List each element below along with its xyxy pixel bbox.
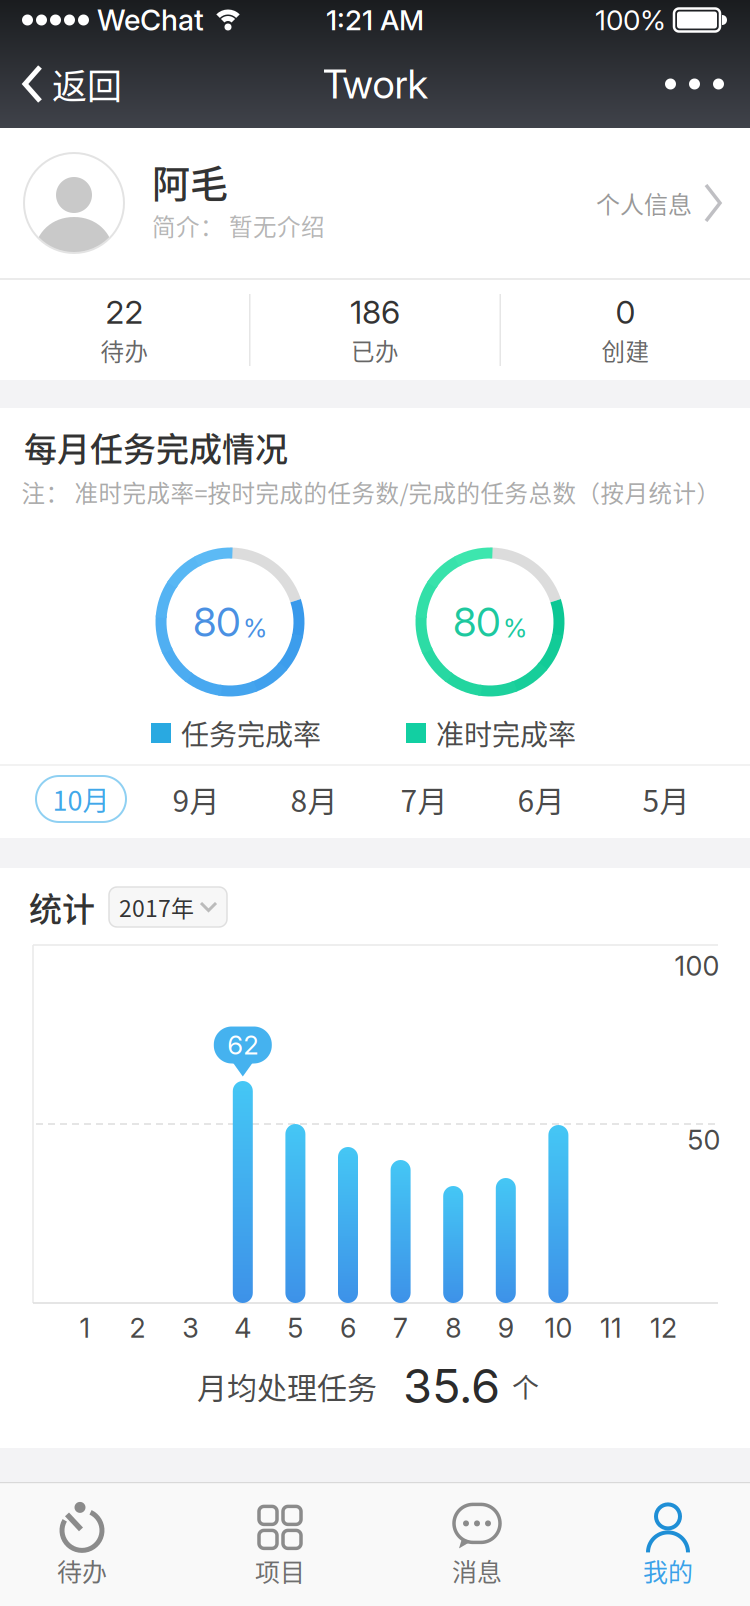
staticText: 11	[600, 1312, 622, 1344]
button[interactable]: 消息	[452, 1502, 502, 1589]
staticText: 个	[500, 1366, 539, 1406]
staticText: 待办	[100, 333, 148, 367]
button[interactable]: More	[665, 78, 750, 89]
staticText: 2017年	[119, 890, 194, 924]
staticText: 80	[453, 598, 501, 646]
staticText: 10月	[52, 779, 109, 819]
button[interactable]: 待办	[57, 1502, 107, 1589]
staticText: 任务完成率	[181, 713, 321, 753]
staticText: 准时完成率	[436, 713, 576, 753]
staticText: 80	[193, 598, 241, 646]
button[interactable]: 9月	[172, 776, 219, 822]
staticText: 待办	[57, 1552, 107, 1589]
staticText: 9月	[172, 777, 219, 821]
staticText: 100	[674, 950, 719, 982]
staticText: 6	[340, 1312, 356, 1344]
staticText: 62	[227, 1029, 258, 1061]
staticText: 12	[650, 1312, 677, 1344]
staticText: 我的	[643, 1552, 693, 1589]
staticText: 22	[105, 293, 143, 331]
staticText: 9	[498, 1312, 514, 1344]
button[interactable]: 项目	[255, 1502, 305, 1589]
staticText: 186	[350, 293, 400, 331]
staticText: 创建	[601, 333, 649, 367]
staticText: 4	[234, 1312, 251, 1344]
button[interactable]: 7月	[400, 776, 447, 822]
button[interactable]: 22	[0, 293, 249, 367]
staticText: 8月	[290, 777, 337, 821]
staticText: 50	[687, 1124, 720, 1156]
staticText: 6月	[517, 777, 564, 821]
staticText: 7月	[400, 777, 447, 821]
button[interactable]: 阿毛	[0, 128, 750, 278]
staticText: 1	[79, 1312, 90, 1344]
staticText: 返回	[52, 59, 122, 109]
staticText: 个人信息	[596, 186, 692, 220]
button[interactable]: 10月	[36, 776, 126, 822]
staticText: 注： 准时完成率=按时完成的任务数/完成的任务总数（按月统计）	[21, 475, 720, 509]
staticText: 统计	[29, 883, 95, 931]
staticText: %	[503, 612, 527, 644]
staticText: 2	[130, 1312, 146, 1344]
staticText: 已办	[351, 333, 399, 367]
staticText: 1:21 AM	[326, 3, 424, 37]
staticText: 10	[544, 1312, 572, 1344]
staticText: 简介： 暂无介绍	[152, 208, 325, 242]
staticText: WeChat	[97, 2, 204, 38]
staticText: 100%	[595, 3, 666, 37]
staticText: 消息	[452, 1552, 502, 1589]
staticText: %	[243, 612, 267, 644]
staticText: 月均处理任务	[197, 1364, 377, 1408]
staticText: 项目	[255, 1552, 305, 1589]
staticText: 0	[615, 293, 635, 331]
button[interactable]: Back	[0, 59, 122, 109]
staticText: 阿毛	[152, 153, 228, 208]
staticText: 35.6	[377, 1358, 500, 1414]
staticText: 每月任务完成情况	[24, 423, 288, 471]
staticText: 3	[182, 1312, 198, 1344]
button[interactable]: 6月	[517, 776, 564, 822]
button[interactable]: 5月	[642, 776, 689, 822]
button[interactable]: 186	[250, 293, 499, 367]
staticText: 7	[393, 1312, 408, 1344]
staticText: Twork	[322, 60, 427, 108]
staticText: 8	[445, 1312, 461, 1344]
staticText: 5月	[642, 777, 689, 821]
button[interactable]: 8月	[290, 776, 337, 822]
button[interactable]: 我的	[643, 1502, 693, 1589]
button[interactable]: 0	[501, 293, 750, 367]
staticText: 5	[287, 1312, 303, 1344]
button[interactable]: 2017年	[109, 887, 227, 927]
